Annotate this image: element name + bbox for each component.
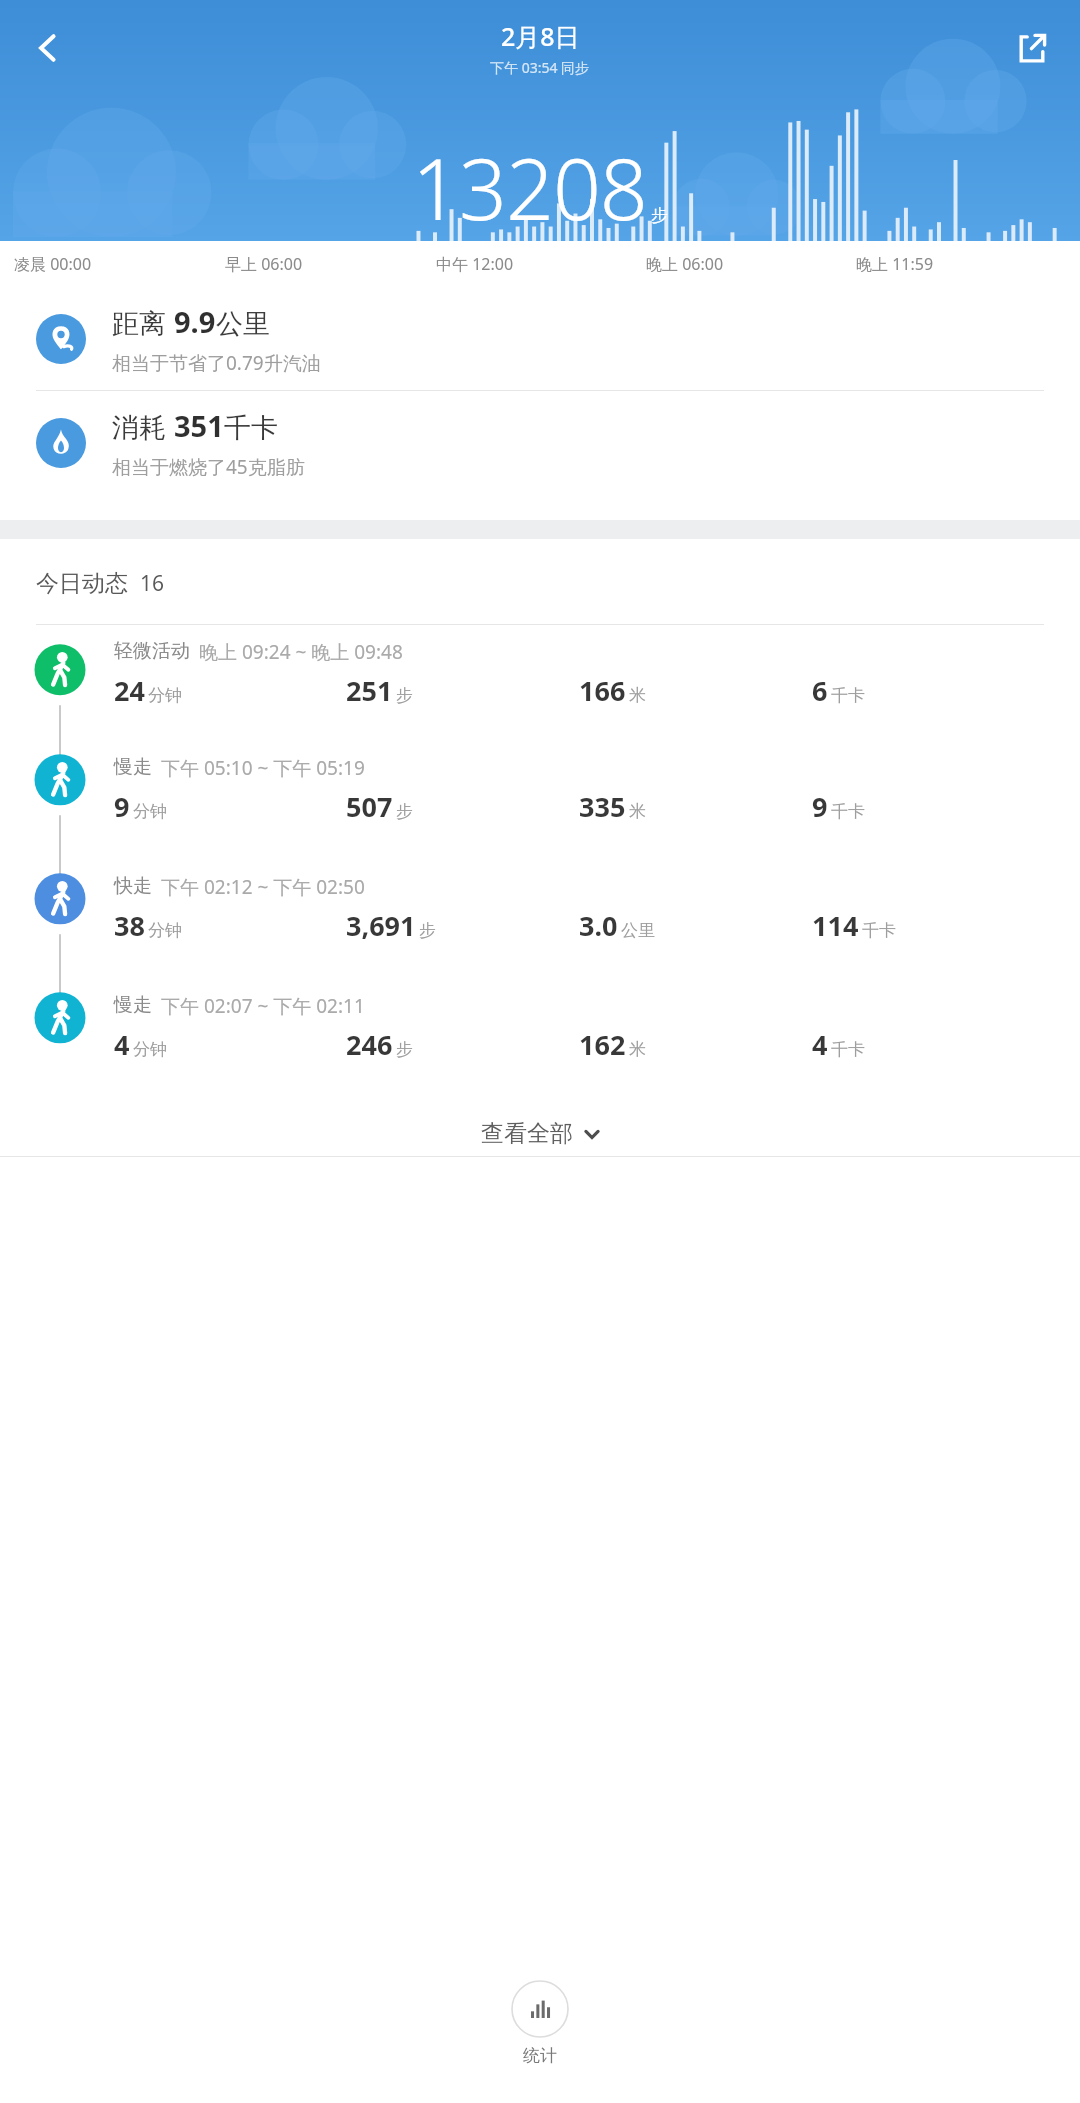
staticText: 16 <box>140 569 165 598</box>
staticText: 千卡 <box>831 801 865 822</box>
staticText: 米 <box>629 1039 646 1060</box>
staticText: 中午 12:00 <box>436 253 646 275</box>
staticText: 351 <box>174 406 224 445</box>
button[interactable]: Share <box>992 8 1072 88</box>
button[interactable]: 轻微活动 <box>0 625 1080 737</box>
staticText: 分钟 <box>133 801 167 822</box>
staticText: 9.9 <box>174 302 216 341</box>
button[interactable]: 慢走 <box>0 737 1080 856</box>
staticText: 公里 <box>216 307 270 341</box>
staticText: 米 <box>629 685 646 706</box>
button[interactable]: 统计 <box>0 1966 1080 2103</box>
staticText: 快走 <box>114 874 152 898</box>
staticText: 分钟 <box>148 685 182 706</box>
staticText: 6 <box>812 672 828 709</box>
staticText: 13208 <box>412 130 647 241</box>
staticText: 相当于节省了0.79升汽油 <box>112 350 321 376</box>
staticText: 统计 <box>523 2045 557 2066</box>
staticText: 轻微活动 <box>114 639 190 663</box>
staticText: 千卡 <box>224 411 278 445</box>
button[interactable]: 消耗 <box>0 391 1080 494</box>
staticText: 早上 06:00 <box>225 253 436 275</box>
staticText: 3.0 <box>579 907 618 944</box>
staticText: 米 <box>629 801 646 822</box>
staticText: 2月8日 <box>501 19 580 53</box>
staticText: 消耗 <box>112 408 174 445</box>
button[interactable]: Back <box>8 8 88 88</box>
staticText: 9 <box>812 788 828 825</box>
staticText: 4 <box>114 1026 130 1063</box>
staticText: 162 <box>579 1026 626 1063</box>
staticText: 步 <box>396 801 413 822</box>
staticText: 公里 <box>621 920 655 941</box>
staticText: 今日动态 <box>36 569 128 598</box>
button[interactable]: 快走 <box>0 856 1080 975</box>
staticText: 步 <box>396 1039 413 1060</box>
staticText: 下午 03:54 同步 <box>490 58 590 77</box>
staticText: 3,691 <box>346 907 416 944</box>
staticText: 下午 02:07 ~ 下午 02:11 <box>161 993 365 1019</box>
staticText: 千卡 <box>862 920 896 941</box>
button[interactable]: 慢走 <box>0 975 1080 1094</box>
staticText: 距离 <box>112 304 174 341</box>
staticText: 下午 05:10 ~ 下午 05:19 <box>161 755 365 781</box>
staticText: 507 <box>346 788 393 825</box>
staticText: 166 <box>579 672 626 709</box>
staticText: 分钟 <box>148 920 182 941</box>
staticText: 下午 02:12 ~ 下午 02:50 <box>161 874 365 900</box>
staticText: 查看全部 <box>481 1119 573 1148</box>
staticText: 晚上 09:24 ~ 晚上 09:48 <box>199 639 403 665</box>
staticText: 千卡 <box>831 1039 865 1060</box>
staticText: 步 <box>396 685 413 706</box>
staticText: 步 <box>651 205 668 226</box>
staticText: 凌晨 00:00 <box>14 253 225 275</box>
staticText: 相当于燃烧了45克脂肪 <box>112 454 305 480</box>
staticText: 38 <box>114 907 145 944</box>
button[interactable]: 查看全部 <box>0 1110 1080 1156</box>
staticText: 246 <box>346 1026 393 1063</box>
staticText: 步 <box>419 920 436 941</box>
staticText: 251 <box>346 672 393 709</box>
staticText: 335 <box>579 788 626 825</box>
staticText: 分钟 <box>133 1039 167 1060</box>
staticText: 114 <box>812 907 859 944</box>
staticText: 慢走 <box>114 755 152 779</box>
staticText: 千卡 <box>831 685 865 706</box>
staticText: 晚上 06:00 <box>646 253 856 275</box>
staticText: 4 <box>812 1026 828 1063</box>
button[interactable]: 距离 <box>0 287 1080 390</box>
staticText: 晚上 11:59 <box>856 253 1066 275</box>
staticText: 慢走 <box>114 993 152 1017</box>
staticText: 24 <box>114 672 145 709</box>
staticText: 9 <box>114 788 130 825</box>
